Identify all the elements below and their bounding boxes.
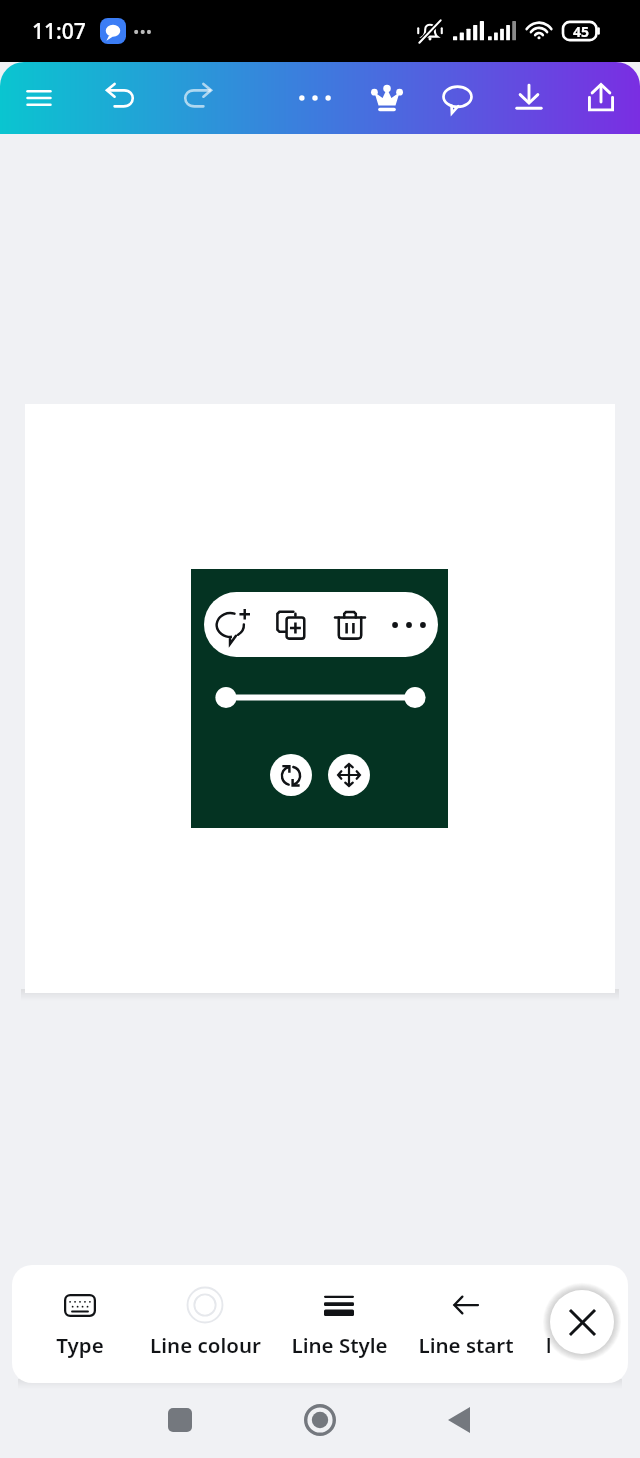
button[interactable]: Recents	[156, 1389, 204, 1437]
button[interactable]: Line start	[401, 1265, 531, 1383]
button[interactable]: More options	[290, 73, 340, 123]
staticText: Line colour	[150, 1331, 261, 1359]
button[interactable]: Redo	[172, 73, 222, 123]
staticText: •••	[133, 20, 153, 43]
button[interactable]: Line Style	[274, 1265, 404, 1383]
button[interactable]: Download	[504, 73, 554, 123]
button[interactable]: Line colour	[140, 1265, 270, 1383]
button[interactable]: Share	[576, 73, 626, 123]
button[interactable]: Pro	[362, 73, 412, 123]
staticText: Type	[56, 1331, 104, 1359]
button[interactable]: Menu	[14, 73, 64, 123]
button[interactable]: Undo	[96, 73, 146, 123]
button[interactable]: More	[379, 592, 438, 657]
button[interactable]: Rotate	[270, 754, 312, 796]
button[interactable]: Add comment	[204, 592, 262, 657]
staticText: 45	[573, 22, 590, 41]
staticText: Line Style	[291, 1331, 388, 1359]
button[interactable]: Duplicate	[262, 592, 320, 657]
button[interactable]: Back	[436, 1389, 484, 1437]
staticText: Line start	[418, 1331, 514, 1359]
button[interactable]: Home	[296, 1389, 344, 1437]
button[interactable]: Comments	[432, 73, 482, 123]
staticText: 11:07	[32, 17, 86, 46]
button[interactable]: Line end	[530, 1265, 626, 1383]
button[interactable]: Move	[328, 754, 370, 796]
button[interactable]: Type	[15, 1265, 145, 1383]
staticText: l	[546, 1333, 552, 1359]
button[interactable]: Delete	[320, 592, 379, 657]
button[interactable]: Close	[550, 1290, 614, 1354]
